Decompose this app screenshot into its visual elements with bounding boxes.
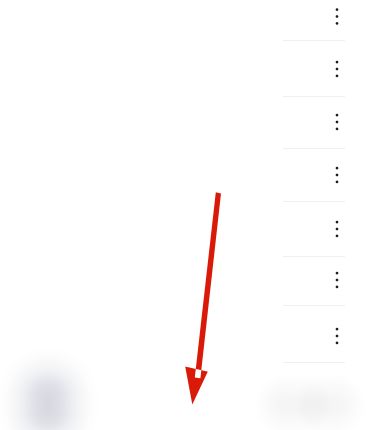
button[interactable]: More options bbox=[319, 206, 355, 252]
button[interactable]: More options bbox=[319, 46, 355, 92]
button[interactable]: More options bbox=[319, 257, 355, 303]
button[interactable]: More options bbox=[319, 313, 355, 359]
button[interactable]: More options bbox=[319, 99, 355, 145]
button[interactable]: More options bbox=[319, 0, 355, 39]
button[interactable]: More options bbox=[319, 152, 355, 198]
